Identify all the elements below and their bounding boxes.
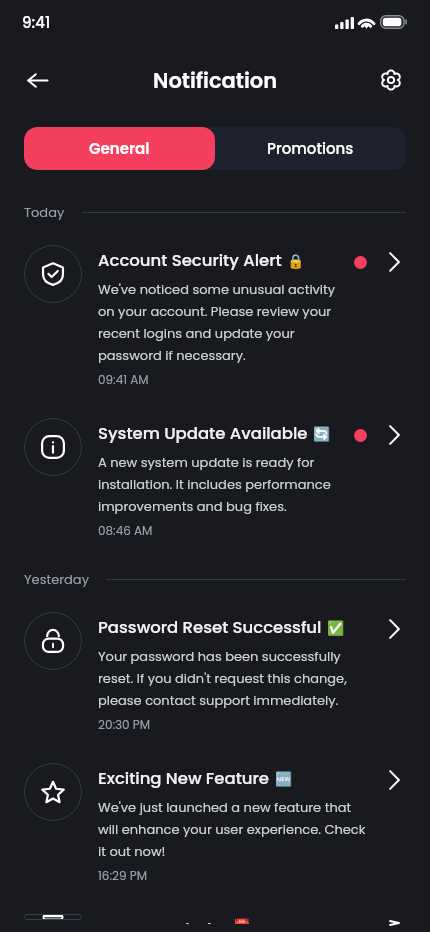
button[interactable]: Open notification [383,769,405,791]
staticText: We've noticed some unusual activity on y… [98,278,346,366]
staticText: 📅 [233,918,251,924]
button[interactable]: Settings [369,58,413,102]
staticText: Yesterday [24,570,89,588]
staticText: 9:41 [22,12,51,33]
button[interactable]: Open notification [383,618,405,640]
button[interactable]: Back [15,58,59,102]
staticText: Your password has been successfully rese… [98,645,370,711]
staticText: Account Security Alert [98,249,282,272]
staticText: Notification [153,66,278,95]
staticText: System Update Available [98,422,308,445]
staticText: 🆕 [275,771,293,787]
staticText: Exciting New Feature [98,767,270,790]
staticText: Today [24,203,65,221]
staticText: 08:46 AM [98,523,153,539]
button[interactable]: Open notification [383,251,405,273]
button[interactable]: Open notification [383,424,405,446]
button[interactable]: Password Reset Successful [0,590,430,741]
staticText: Promotions [267,138,354,159]
button[interactable]: Account Security Alert [0,223,430,396]
button[interactable]: Event Reminder [0,892,430,932]
button[interactable]: Open notification [383,920,405,926]
staticText: 20:30 PM [98,717,151,733]
staticText: ✅ [327,620,345,636]
staticText: Password Reset Successful [98,616,322,639]
staticText: 🔒 [287,253,305,269]
staticText: 🔄 [313,426,331,442]
staticText: 09:41 AM [98,372,149,388]
staticText: 16:29 PM [98,868,147,884]
staticText: Event Reminder [98,918,228,924]
button[interactable]: General [24,127,215,170]
button[interactable]: System Update Available [0,396,430,547]
button[interactable]: Promotions [215,127,406,170]
staticText: A new system update is ready for install… [98,451,346,517]
staticText: We've just launched a new feature that w… [98,796,370,862]
button[interactable]: Exciting New Feature [0,741,430,892]
staticText: General [89,138,150,159]
